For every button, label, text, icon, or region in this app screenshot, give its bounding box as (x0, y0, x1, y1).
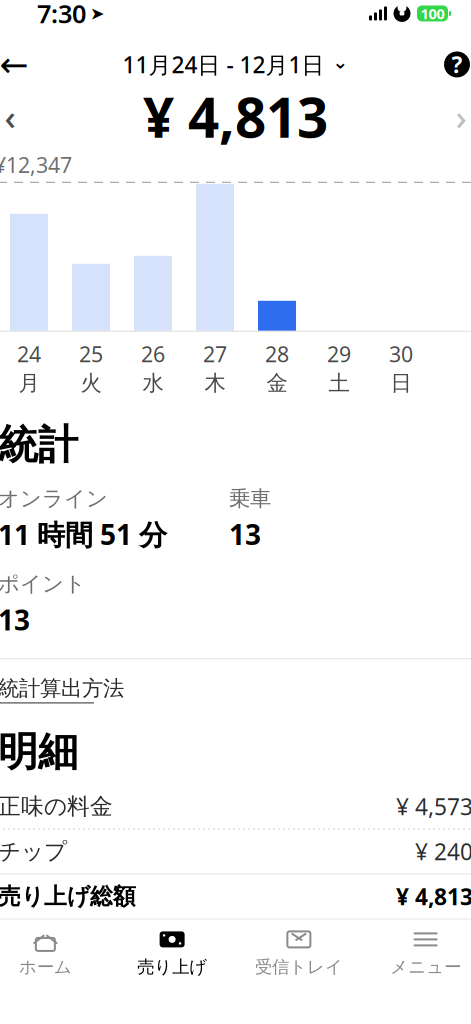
staticText: 24 (17, 340, 41, 368)
staticText: 火 (80, 370, 101, 396)
button[interactable]: 統計算出方法 (0, 659, 124, 713)
button[interactable]: 11月24日 - 12月1日 (116, 40, 354, 88)
staticText: ホーム (19, 956, 72, 978)
staticText: ‹ (4, 93, 15, 139)
button[interactable]: 売り上げ (109, 925, 236, 979)
staticText: ¥ 4,813 (396, 881, 471, 912)
staticText: 30 (389, 340, 413, 368)
staticText: 受信トレイ (255, 956, 343, 978)
staticText: 統計算出方法 (0, 675, 124, 701)
staticText: ➤ (90, 4, 105, 23)
staticText: 金 (266, 370, 287, 396)
staticText: 売り上げ (137, 956, 207, 978)
button[interactable]: 次の週 (433, 90, 471, 142)
staticText: 25 (79, 340, 103, 368)
staticText: 28 (265, 340, 289, 368)
staticText: ? (451, 49, 462, 79)
button[interactable]: ホーム (0, 925, 109, 979)
staticText: 正味の料金 (0, 793, 113, 820)
staticText: ← (0, 45, 28, 84)
button[interactable]: 戻る (0, 40, 40, 88)
staticText: 月 (18, 370, 39, 396)
staticText: 11月24日 - 12月1日 (122, 49, 324, 79)
staticText: 26 (141, 340, 165, 368)
staticText: 100 (420, 4, 444, 23)
staticText: 11 時間 51 分 (0, 516, 167, 553)
staticText: 27 (203, 340, 227, 368)
staticText: › (455, 93, 466, 139)
staticText: 売り上げ総額 (0, 883, 136, 910)
staticText: オンライン (0, 485, 108, 512)
staticText: 日 (390, 370, 411, 396)
staticText: ¥ 4,813 (143, 80, 328, 153)
staticText: ポイント (0, 571, 86, 597)
staticText: メニュー (390, 956, 461, 978)
staticText: 29 (327, 340, 351, 368)
staticText: 13 (0, 601, 30, 638)
staticText: 統計 (0, 420, 78, 469)
staticText: ⌄ (332, 51, 348, 73)
staticText: 水 (142, 370, 163, 396)
staticText: ¥12,347 (0, 150, 72, 179)
button[interactable]: メニュー (362, 925, 471, 979)
staticText: 土 (328, 370, 349, 396)
staticText: ¥ 4,573 (396, 791, 471, 822)
button[interactable]: 前の週 (0, 90, 38, 142)
staticText: ¥ 240 (415, 836, 471, 867)
staticText: チップ (0, 838, 67, 865)
button[interactable]: ヘルプ (431, 40, 471, 88)
staticText: 7:30 (37, 0, 86, 30)
staticText: 乗車 (229, 485, 271, 512)
staticText: 13 (229, 516, 261, 553)
staticText: 明細 (0, 727, 78, 776)
staticText: 木 (204, 370, 225, 396)
button[interactable]: 受信トレイ (235, 925, 362, 979)
